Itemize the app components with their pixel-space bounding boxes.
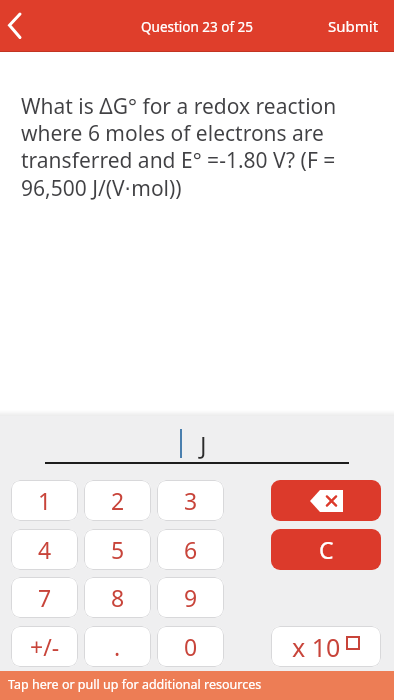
staticText: 2: [111, 485, 125, 516]
button[interactable]: 3: [157, 480, 224, 521]
button[interactable]: C: [271, 529, 381, 570]
staticText: 3: [184, 485, 198, 516]
button[interactable]: 9: [157, 577, 224, 618]
staticText: 7: [38, 582, 52, 613]
staticText: J: [200, 428, 207, 461]
staticText: What is ΔG° for a redox reaction where 6…: [21, 92, 337, 202]
button[interactable]: .: [84, 626, 151, 667]
staticText: Submit: [328, 16, 379, 36]
button[interactable]: [271, 480, 381, 521]
button[interactable]: 1: [11, 480, 78, 521]
staticText: 0: [184, 631, 198, 662]
staticText: 6: [184, 534, 198, 565]
staticText: 4: [38, 534, 52, 565]
staticText: .: [114, 631, 121, 662]
button[interactable]: 5: [84, 529, 151, 570]
staticText: x 10: [292, 630, 341, 664]
staticText: 9: [184, 582, 198, 613]
button[interactable]: 2: [84, 480, 151, 521]
button[interactable]: 8: [84, 577, 151, 618]
staticText: 8: [111, 582, 125, 613]
button[interactable]: 7: [11, 577, 78, 618]
staticText: C: [319, 534, 334, 565]
button[interactable]: [0, 8, 36, 48]
staticText: Question 23 of 25: [141, 18, 254, 36]
button[interactable]: Tap here or pull up for additional resou…: [0, 671, 394, 700]
button[interactable]: +/-: [11, 626, 78, 667]
button[interactable]: x 10: [271, 626, 381, 667]
staticText: +/-: [30, 631, 60, 662]
staticText: 1: [38, 485, 52, 516]
button[interactable]: 4: [11, 529, 78, 570]
staticText: Tap here or pull up for additional resou…: [8, 676, 262, 693]
button[interactable]: Submit: [328, 16, 379, 36]
button[interactable]: 0: [157, 626, 224, 667]
button[interactable]: 6: [157, 529, 224, 570]
staticText: 5: [111, 534, 125, 565]
